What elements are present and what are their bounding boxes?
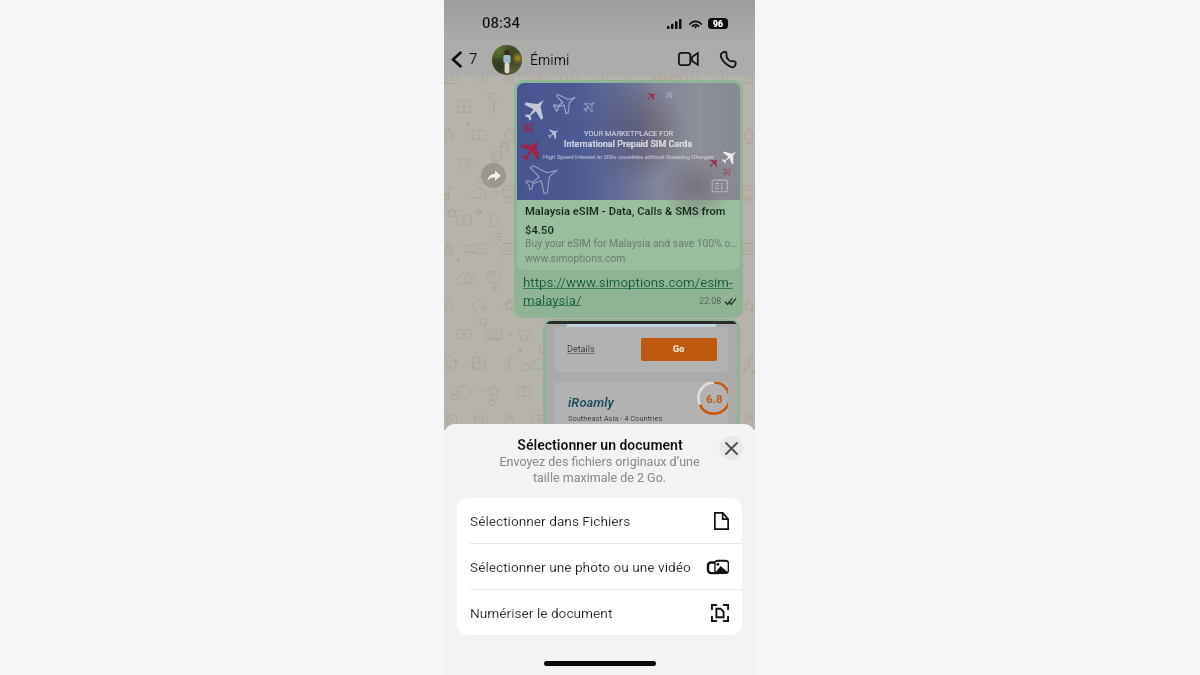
button[interactable]: Go xyxy=(641,338,717,361)
staticText: Sélectionner un document xyxy=(517,437,683,453)
staticText: Southeast Asia - 4 Countries xyxy=(568,414,663,423)
staticText: Sélectionner dans Fichiers xyxy=(470,513,631,529)
staticText: iRoamly xyxy=(568,395,614,410)
staticText: Numériser le document xyxy=(470,605,613,621)
button[interactable]: Sélectionner dans Fichiers xyxy=(457,498,742,543)
staticText: 6.8 xyxy=(706,392,723,405)
staticText: https://www.simoptions.com/esim- malaysi… xyxy=(523,275,733,308)
staticText: www.simoptions.com xyxy=(525,252,626,264)
staticText: 7 xyxy=(469,50,478,68)
button[interactable]: Voice call xyxy=(712,44,742,74)
staticText: International Prepaid SIM Cards xyxy=(564,139,693,150)
staticText: 22:08 xyxy=(699,296,722,307)
staticText: Buy your eSIM for Malaysia and save 100%… xyxy=(525,237,738,249)
staticText: 08:34 xyxy=(482,14,521,32)
staticText: Sélectionner une photo ou une vidéo xyxy=(470,559,691,575)
staticText: Émimi xyxy=(530,52,570,68)
staticText: 96 xyxy=(713,19,723,29)
staticText: High Speed Internet in 200+ countries wi… xyxy=(543,153,714,160)
button[interactable]: Numériser le document xyxy=(457,590,742,635)
staticText: Details xyxy=(567,344,595,355)
button[interactable]: Forward xyxy=(481,163,506,188)
button[interactable]: Video call xyxy=(672,43,704,75)
staticText: YOUR MARKETPLACE FOR xyxy=(584,129,674,138)
staticText: Go xyxy=(673,344,685,355)
staticText: Malaysia eSIM - Data, Calls & SMS from $… xyxy=(525,205,739,237)
button[interactable]: Close xyxy=(719,436,743,460)
button[interactable]: Sélectionner une photo ou une vidéo xyxy=(457,544,742,589)
button[interactable]: Back xyxy=(444,40,483,76)
staticText: Envoyez des fichiers originaux d’une tai… xyxy=(499,454,700,485)
